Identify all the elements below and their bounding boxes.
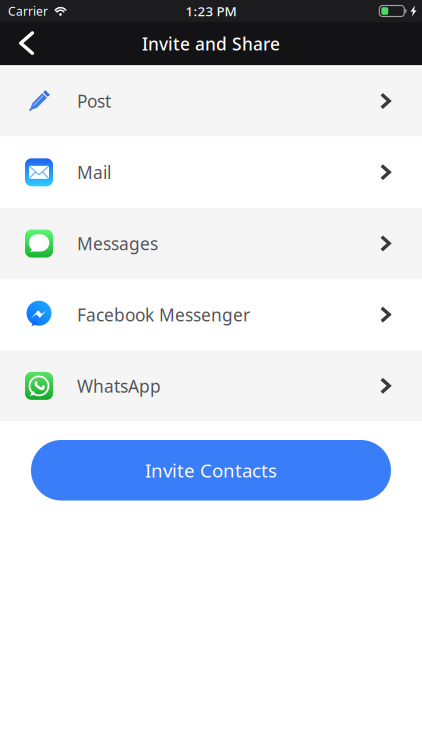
button[interactable]: Post xyxy=(0,65,422,137)
button[interactable]: Messages xyxy=(0,208,422,279)
button[interactable]: WhatsApp xyxy=(0,350,422,421)
button[interactable]: Back xyxy=(0,22,48,65)
staticText: Invite and Share xyxy=(142,32,280,55)
staticText: Carrier xyxy=(8,3,48,19)
button[interactable]: Invite Contacts xyxy=(31,440,391,500)
staticText: Mail xyxy=(77,161,111,184)
button[interactable]: Facebook Messenger xyxy=(0,279,422,350)
staticText: Post xyxy=(77,90,111,113)
button[interactable]: Mail xyxy=(0,137,422,208)
staticText: Facebook Messenger xyxy=(77,303,250,326)
staticText: Invite Contacts xyxy=(145,458,277,483)
staticText: 1:23 PM xyxy=(185,2,236,20)
staticText: WhatsApp xyxy=(77,374,161,397)
staticText: Messages xyxy=(77,232,158,255)
